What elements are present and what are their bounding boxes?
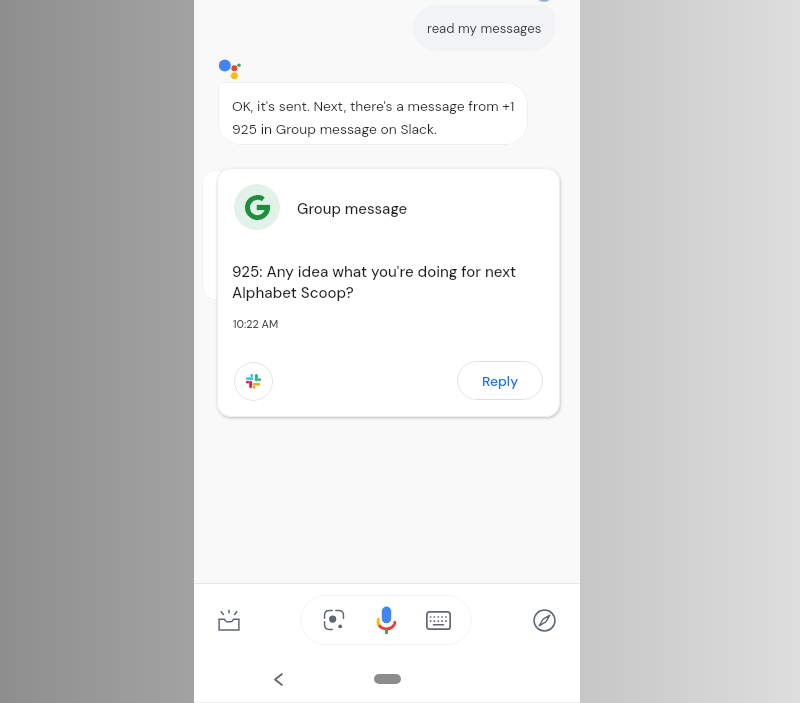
button[interactable]: Voice search	[364, 598, 408, 642]
button[interactable]: Snapshot	[211, 602, 247, 638]
staticText: Reply	[482, 372, 519, 390]
button[interactable]: Google Lens	[313, 599, 355, 641]
button[interactable]: read my messages	[413, 5, 555, 51]
button[interactable]: Explore	[526, 602, 562, 638]
button[interactable]: Keyboard	[417, 599, 459, 641]
staticText: 10:22 AM	[233, 317, 279, 331]
button[interactable]: Home	[374, 674, 401, 684]
staticText: read my messages	[427, 20, 542, 37]
button[interactable]: Back	[264, 665, 292, 693]
staticText: OK, it's sent. Next, there's a message f…	[232, 97, 524, 138]
staticText: Group message	[297, 199, 408, 218]
staticText: 925: Any idea what you're doing for next…	[232, 262, 544, 303]
button[interactable]: Slack	[234, 362, 273, 401]
button[interactable]: OK, it's sent. Next, there's a message f…	[218, 82, 528, 145]
button[interactable]: Group message	[217, 168, 560, 417]
button[interactable]: Reply	[457, 361, 543, 400]
